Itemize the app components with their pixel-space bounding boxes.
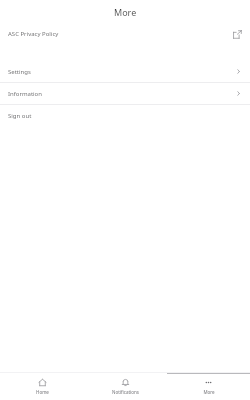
staticText: Home bbox=[36, 389, 49, 395]
button[interactable]: More bbox=[167, 373, 250, 400]
button[interactable]: Sign out bbox=[0, 105, 250, 126]
staticText: Sign out bbox=[8, 112, 32, 120]
other: Open privacy policy in browser bbox=[233, 30, 242, 39]
staticText: Settings bbox=[8, 68, 31, 76]
staticText: More bbox=[114, 6, 137, 18]
button[interactable]: Settings bbox=[0, 61, 250, 82]
staticText: Information bbox=[8, 90, 42, 98]
button[interactable]: Home bbox=[0, 373, 84, 400]
button[interactable]: Notifications bbox=[84, 373, 167, 400]
other: Notifications bbox=[121, 378, 130, 387]
staticText: More bbox=[203, 389, 215, 395]
button[interactable]: Information bbox=[0, 83, 250, 104]
staticText: Notifications bbox=[112, 389, 139, 395]
other: More bbox=[204, 378, 213, 387]
button[interactable]: ASC Privacy Policy bbox=[0, 24, 250, 44]
staticText: ASC Privacy Policy bbox=[8, 30, 59, 38]
other: Home bbox=[38, 378, 47, 387]
